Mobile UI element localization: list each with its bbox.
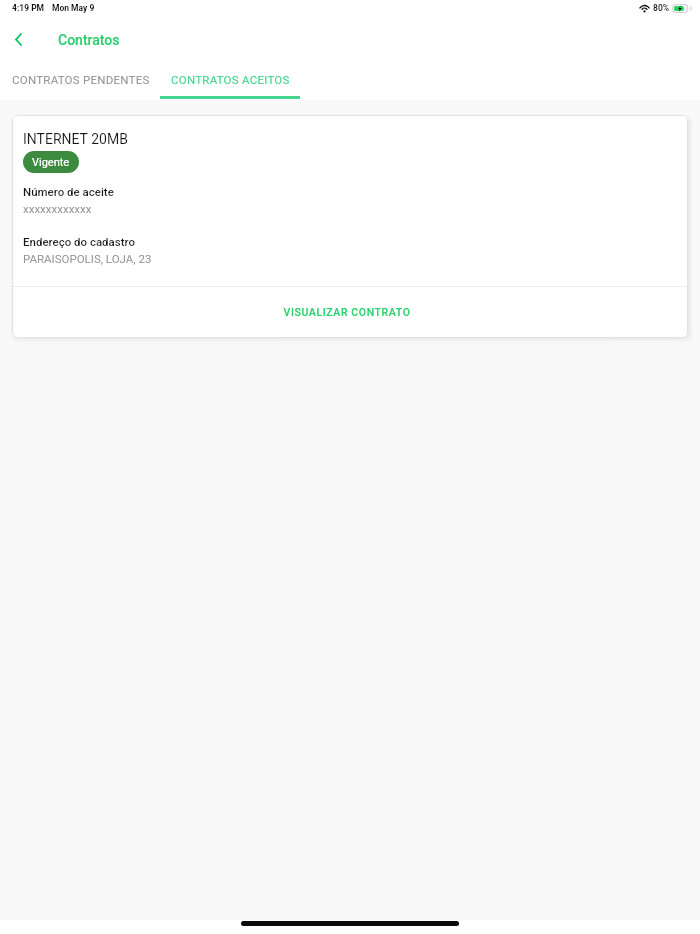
staticText: 80% [653, 3, 670, 13]
staticText: 4:19 PM [12, 3, 45, 13]
staticText: Endereço do cadastro [23, 235, 135, 248]
staticText: Contratos [58, 32, 120, 48]
button[interactable]: Back [0, 19, 36, 59]
staticText: xxxxxxxxxxxx [23, 202, 92, 215]
staticText: Número de aceite [23, 185, 114, 198]
staticText: INTERNET 20MB [23, 131, 128, 147]
button[interactable]: CONTRATOS PENDENTES [1, 60, 160, 99]
staticText: Mon May 9 [52, 3, 95, 13]
staticText: VISUALIZAR CONTRATO [283, 306, 411, 318]
button[interactable]: VISUALIZAR CONTRATO [12, 287, 688, 338]
staticText: CONTRATOS ACEITOS [171, 73, 290, 86]
button[interactable]: CONTRATOS ACEITOS [160, 60, 300, 99]
staticText: Vigente [32, 156, 70, 169]
staticText: CONTRATOS PENDENTES [12, 73, 150, 86]
staticText: PARAISOPOLIS, LOJA, 23 [23, 252, 152, 265]
